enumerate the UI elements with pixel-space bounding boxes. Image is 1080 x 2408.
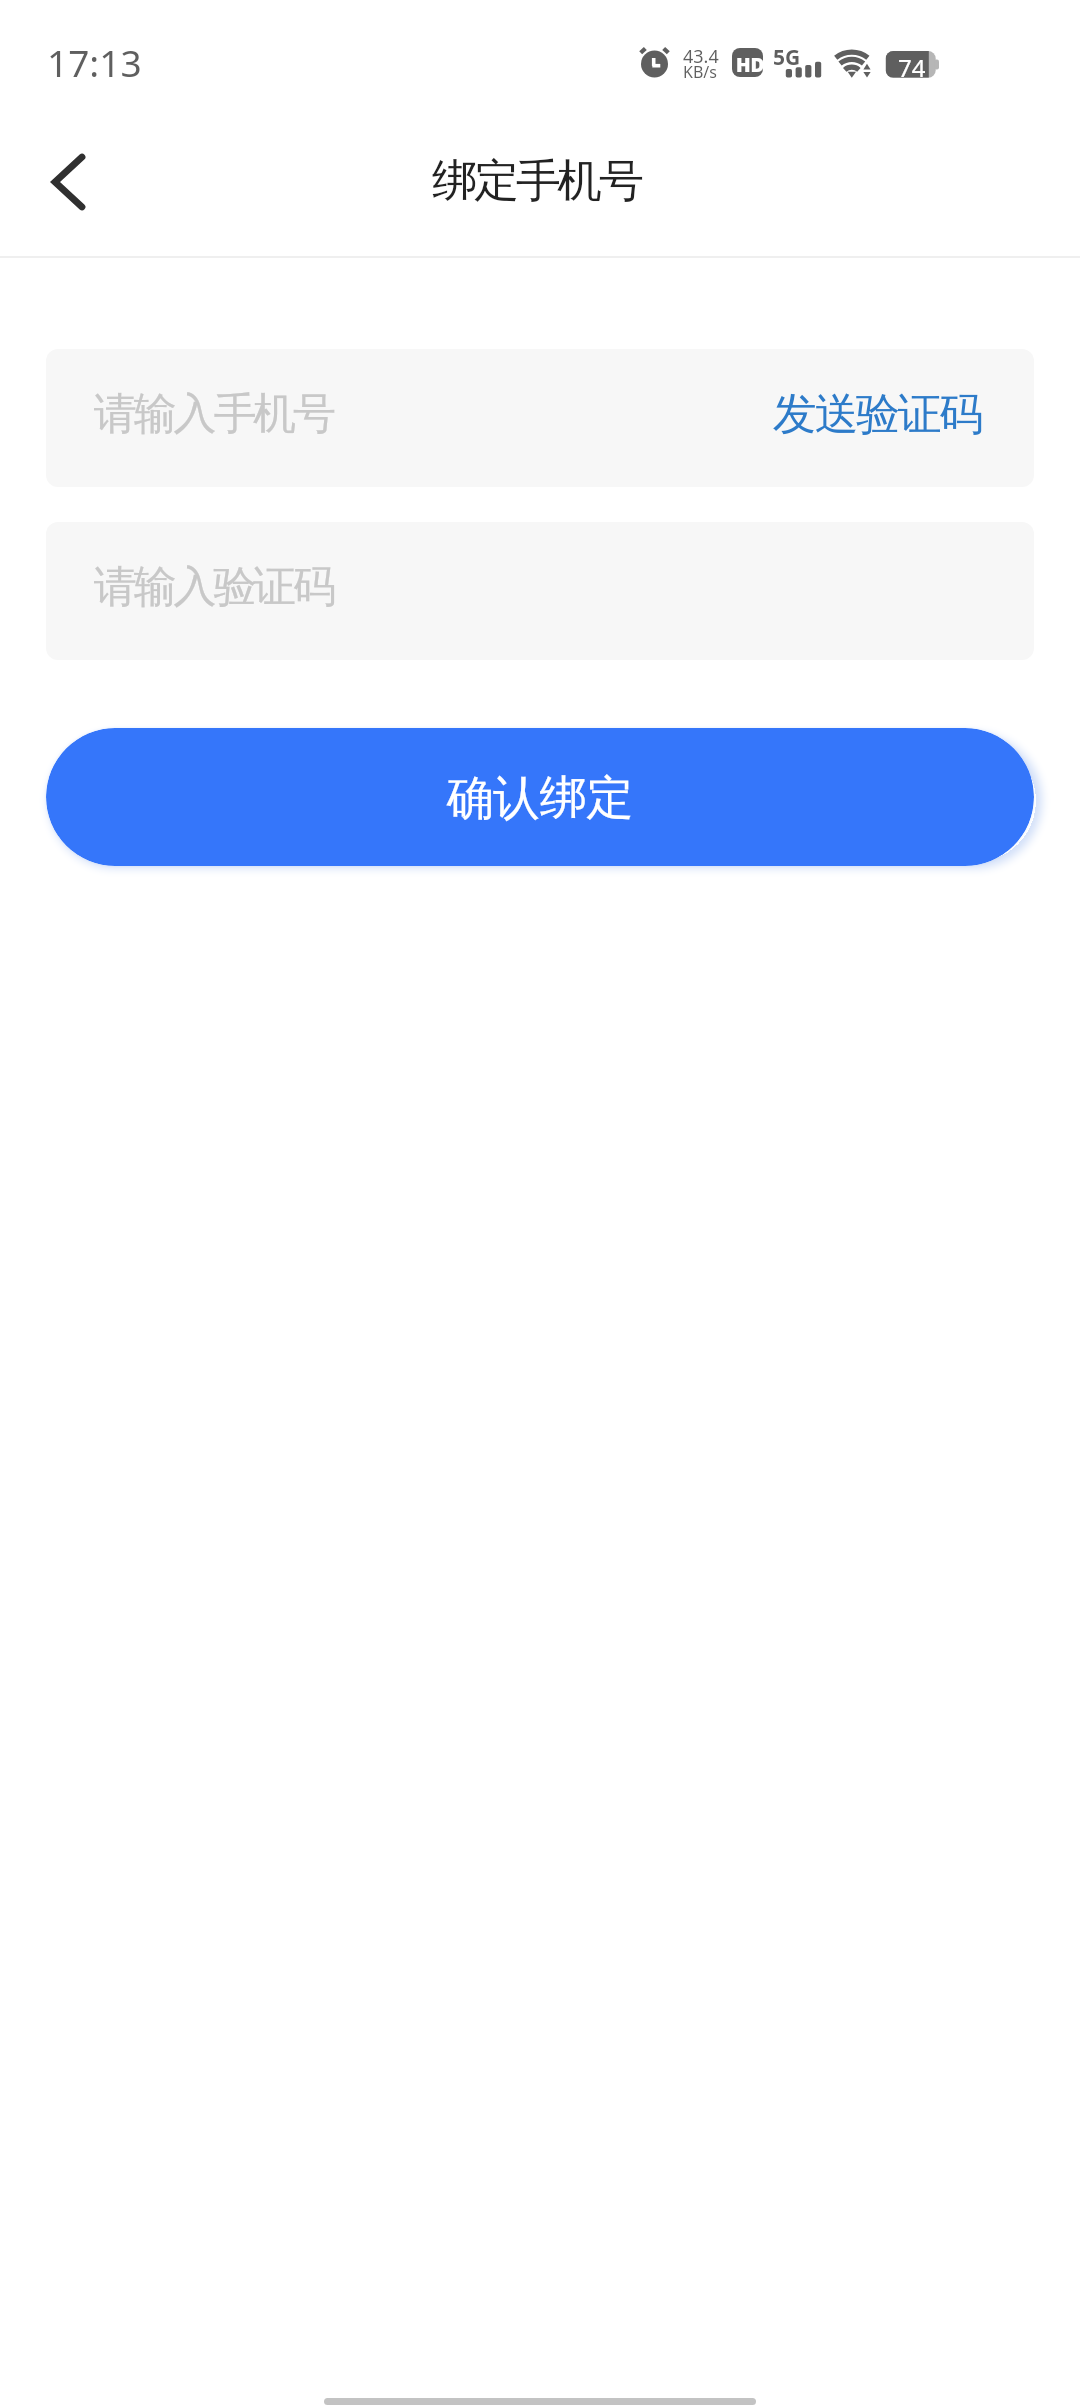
staticText: 74 [898,51,926,84]
staticText: 43.4 [683,44,719,69]
button[interactable]: 发送验证码 [826,349,1034,487]
staticText: 绑定手机号 [432,153,641,210]
staticText: 请输入手机号 [94,387,333,441]
staticText: KB/s [683,61,717,83]
staticText: 发送验证码 [774,387,982,442]
button[interactable]: 请输入手机号 [46,349,1034,487]
staticText: 请输入验证码 [94,560,333,614]
staticText: 17:13 [47,37,142,87]
staticText: HD [736,52,765,78]
button[interactable]: 确认绑定 [46,728,1034,866]
staticText: 确认绑定 [447,769,633,828]
staticText: 5G [773,43,801,72]
button[interactable]: 请输入验证码 [46,522,1034,660]
button[interactable]: Back [0,120,112,256]
